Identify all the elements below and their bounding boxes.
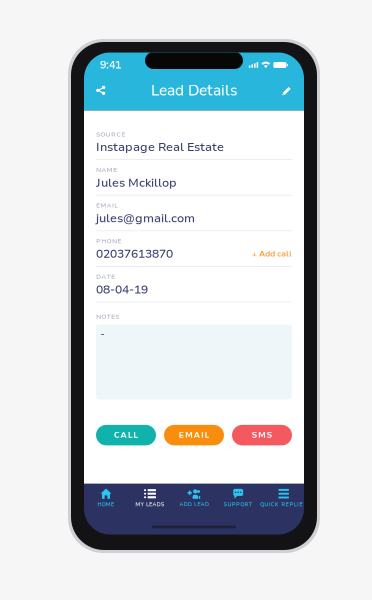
button[interactable]: HOME (84, 484, 128, 509)
button[interactable]: Edit (274, 78, 300, 102)
staticText: EMAIL (96, 201, 118, 210)
staticText: SUPPORT (223, 501, 253, 508)
staticText: SOURCE (96, 130, 125, 139)
staticText: SMS (251, 429, 272, 441)
staticText: DATE (96, 272, 115, 281)
staticText: - (100, 327, 104, 341)
staticText: Instapage Real Estate (96, 139, 224, 155)
button[interactable]: + Add call (252, 247, 292, 260)
staticText: CALL (114, 429, 138, 441)
button[interactable]: EMAIL (164, 425, 224, 445)
staticText: MY LEADS (135, 501, 165, 508)
staticText: + Add call (252, 248, 292, 259)
button[interactable]: SUPPORT (216, 484, 260, 509)
button[interactable]: MY LEADS (128, 484, 172, 509)
staticText: PHONE (96, 237, 121, 245)
staticText: Jules Mckillop (96, 174, 177, 191)
button[interactable]: SMS (232, 425, 292, 445)
staticText: jules@gmail.com (96, 210, 195, 226)
staticText: QUICK REPLIES (260, 501, 307, 508)
button[interactable]: QUICK REPLIES (260, 484, 304, 509)
staticText: EMAIL (179, 429, 209, 441)
staticText: 02037613870 (96, 246, 173, 262)
staticText: ADD LEAD (179, 501, 209, 508)
staticText: NAME (96, 165, 117, 174)
staticText: HOME (97, 501, 115, 508)
staticText: 08-04-19 (96, 281, 148, 298)
button[interactable]: CALL (96, 425, 156, 445)
staticText: 9:41 (100, 58, 121, 72)
button[interactable]: ADD LEAD (172, 484, 216, 509)
staticText: Lead Details (151, 80, 237, 101)
button[interactable]: Share (88, 78, 114, 102)
staticText: NOTES (96, 312, 119, 321)
